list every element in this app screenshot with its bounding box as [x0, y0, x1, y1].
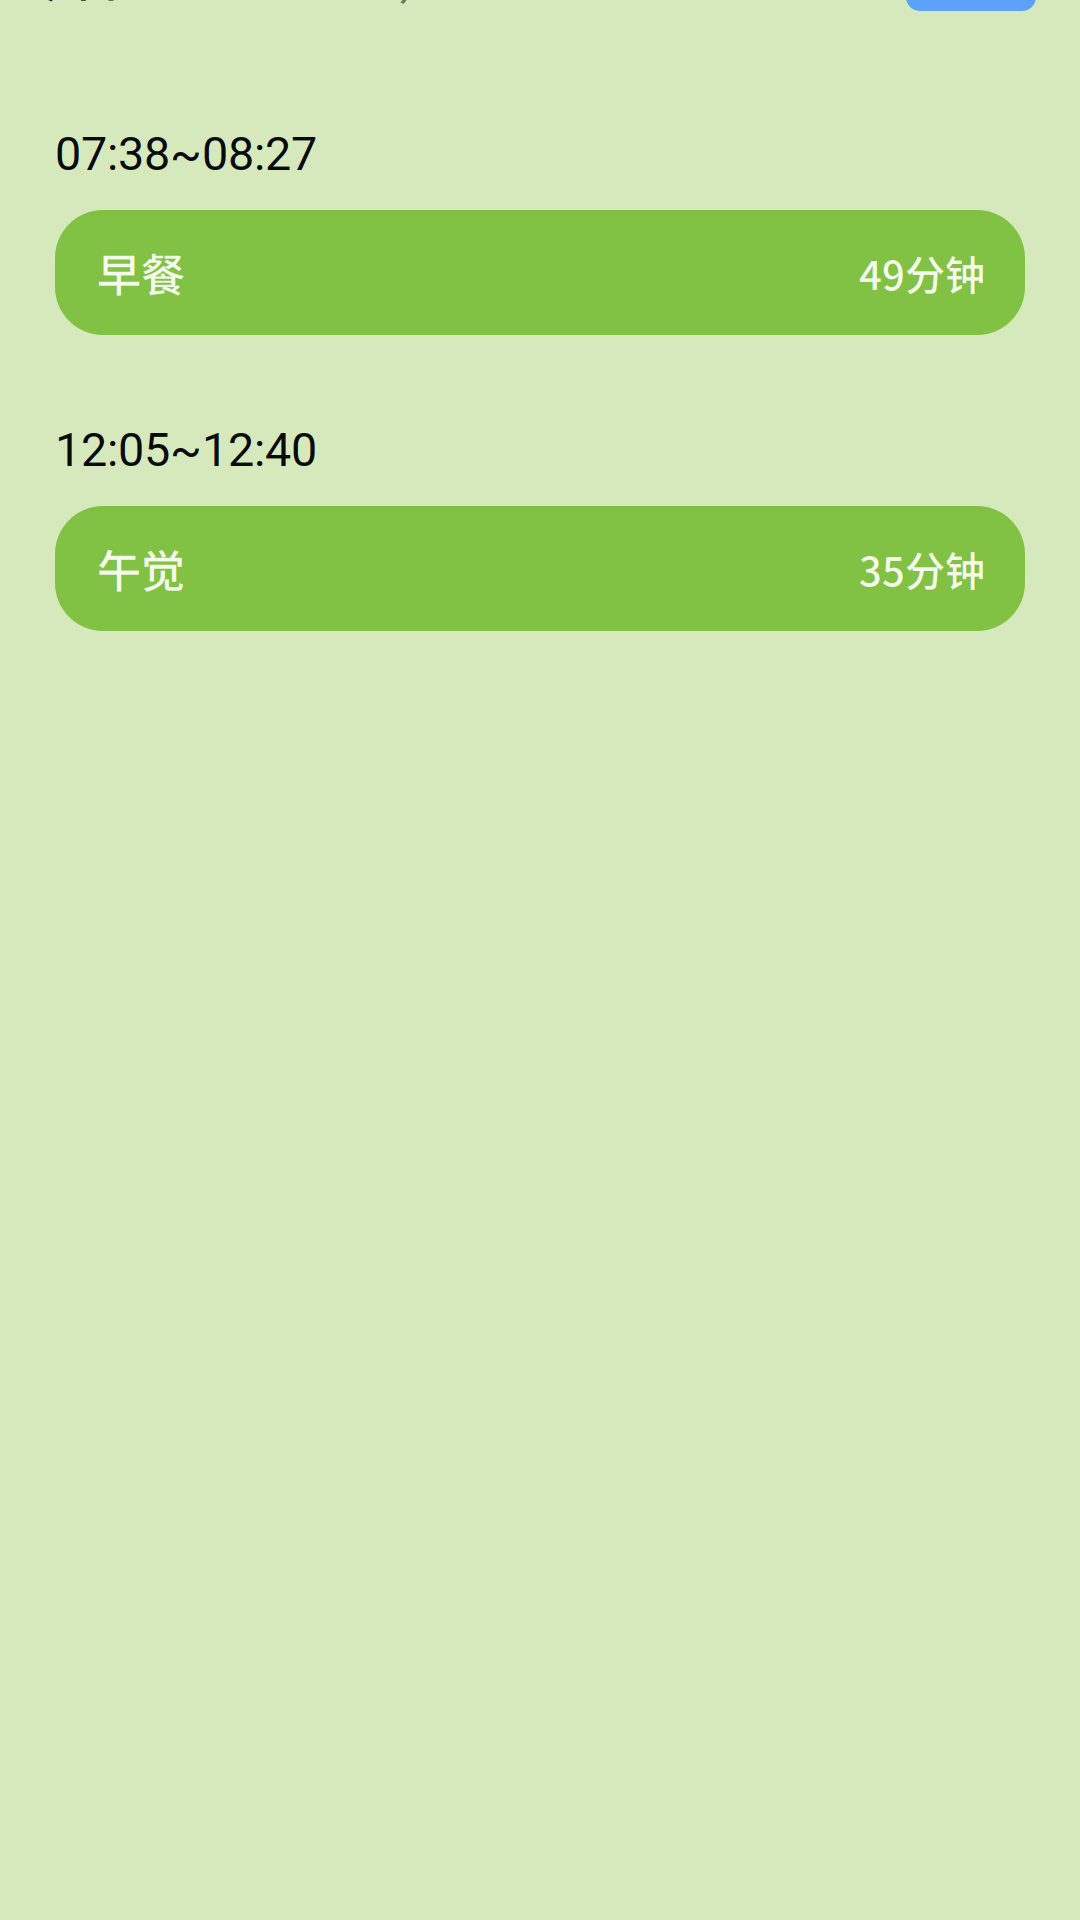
- staticText: 今: [382, 0, 422, 11]
- staticText: 午觉: [97, 537, 185, 600]
- staticText: 07:38~08:27: [55, 127, 317, 181]
- staticText: 早餐: [97, 241, 185, 304]
- button[interactable]: Add entry: [906, 0, 1036, 11]
- staticText: 12:05~12:40: [55, 423, 317, 477]
- staticText: 49分钟: [859, 243, 985, 301]
- button[interactable]: 今日宝: [25, 0, 169, 10]
- button[interactable]: 午觉: [55, 506, 1025, 631]
- staticText: 今日宝: [25, 0, 169, 10]
- button[interactable]: 早餐: [55, 210, 1025, 335]
- staticText: 35分钟: [859, 539, 985, 597]
